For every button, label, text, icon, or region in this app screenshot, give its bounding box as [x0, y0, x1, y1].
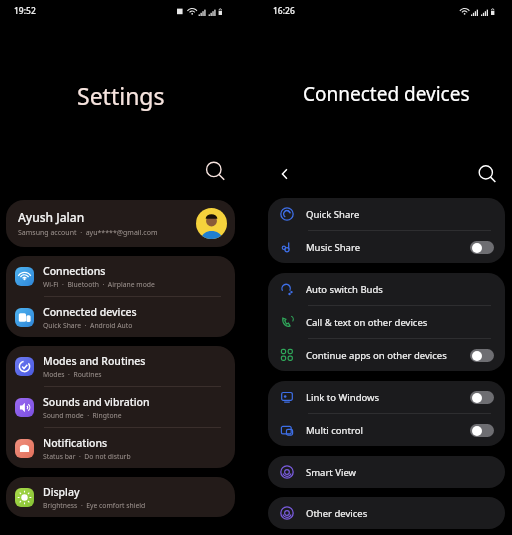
staticText: Music Share: [306, 241, 470, 254]
staticText: Settings: [77, 80, 165, 111]
staticText: Display: [43, 485, 80, 499]
staticText: Auto switch Buds: [306, 283, 494, 296]
staticText: Sounds and vibration: [43, 395, 150, 409]
button[interactable]: Smart View: [268, 456, 505, 488]
button[interactable]: Auto switch Buds: [268, 273, 505, 305]
staticText: Connected devices: [43, 305, 137, 319]
button[interactable]: Continue apps on other devices: [268, 339, 505, 371]
button[interactable]: Quick Share: [268, 198, 505, 230]
button[interactable]: Display: [6, 477, 235, 517]
button[interactable]: Modes and Routines: [6, 346, 235, 386]
staticText: Multi control: [306, 424, 470, 437]
button[interactable]: Ayush Jalan: [6, 200, 235, 247]
button[interactable]: [470, 241, 494, 254]
button[interactable]: Music Share: [268, 231, 505, 263]
button[interactable]: Call & text on other devices: [268, 306, 505, 338]
button[interactable]: Back: [271, 160, 299, 188]
button[interactable]: [470, 391, 494, 404]
staticText: Brightness · Eye comfort shield: [43, 501, 146, 510]
staticText: Smart View: [306, 466, 494, 479]
staticText: Notifications: [43, 436, 108, 450]
button[interactable]: Search: [473, 160, 501, 188]
staticText: Other devices: [306, 507, 494, 520]
staticText: Link to Windows: [306, 391, 470, 404]
button[interactable]: Connected devices: [6, 297, 235, 337]
staticText: Status bar · Do not disturb: [43, 452, 131, 461]
staticText: Call & text on other devices: [306, 316, 494, 329]
button[interactable]: Connections: [6, 256, 235, 296]
staticText: Wi-Fi · Bluetooth · Airplane mode: [43, 280, 155, 289]
staticText: Modes and Routines: [43, 354, 146, 368]
staticText: Quick Share · Android Auto: [43, 321, 133, 330]
staticText: Connections: [43, 264, 106, 278]
button[interactable]: Multi control: [268, 414, 505, 446]
button[interactable]: Notifications: [6, 428, 235, 468]
button[interactable]: [470, 424, 494, 437]
button[interactable]: [470, 349, 494, 362]
staticText: Modes · Routines: [43, 370, 102, 379]
staticText: Sound mode · Ringtone: [43, 411, 122, 420]
staticText: Quick Share: [306, 208, 494, 221]
button[interactable]: Link to Windows: [268, 381, 505, 413]
button[interactable]: Other devices: [268, 497, 505, 529]
button[interactable]: Sounds and vibration: [6, 387, 235, 427]
staticText: Continue apps on other devices: [306, 349, 470, 362]
staticText: 19:52: [14, 5, 36, 17]
staticText: Ayush Jalan: [18, 209, 85, 225]
staticText: Connected devices: [303, 81, 470, 107]
button[interactable]: Search: [200, 156, 230, 186]
staticText: Samsung account · ayu*****@gmail.com: [18, 228, 158, 238]
staticText: 16:26: [273, 5, 295, 17]
